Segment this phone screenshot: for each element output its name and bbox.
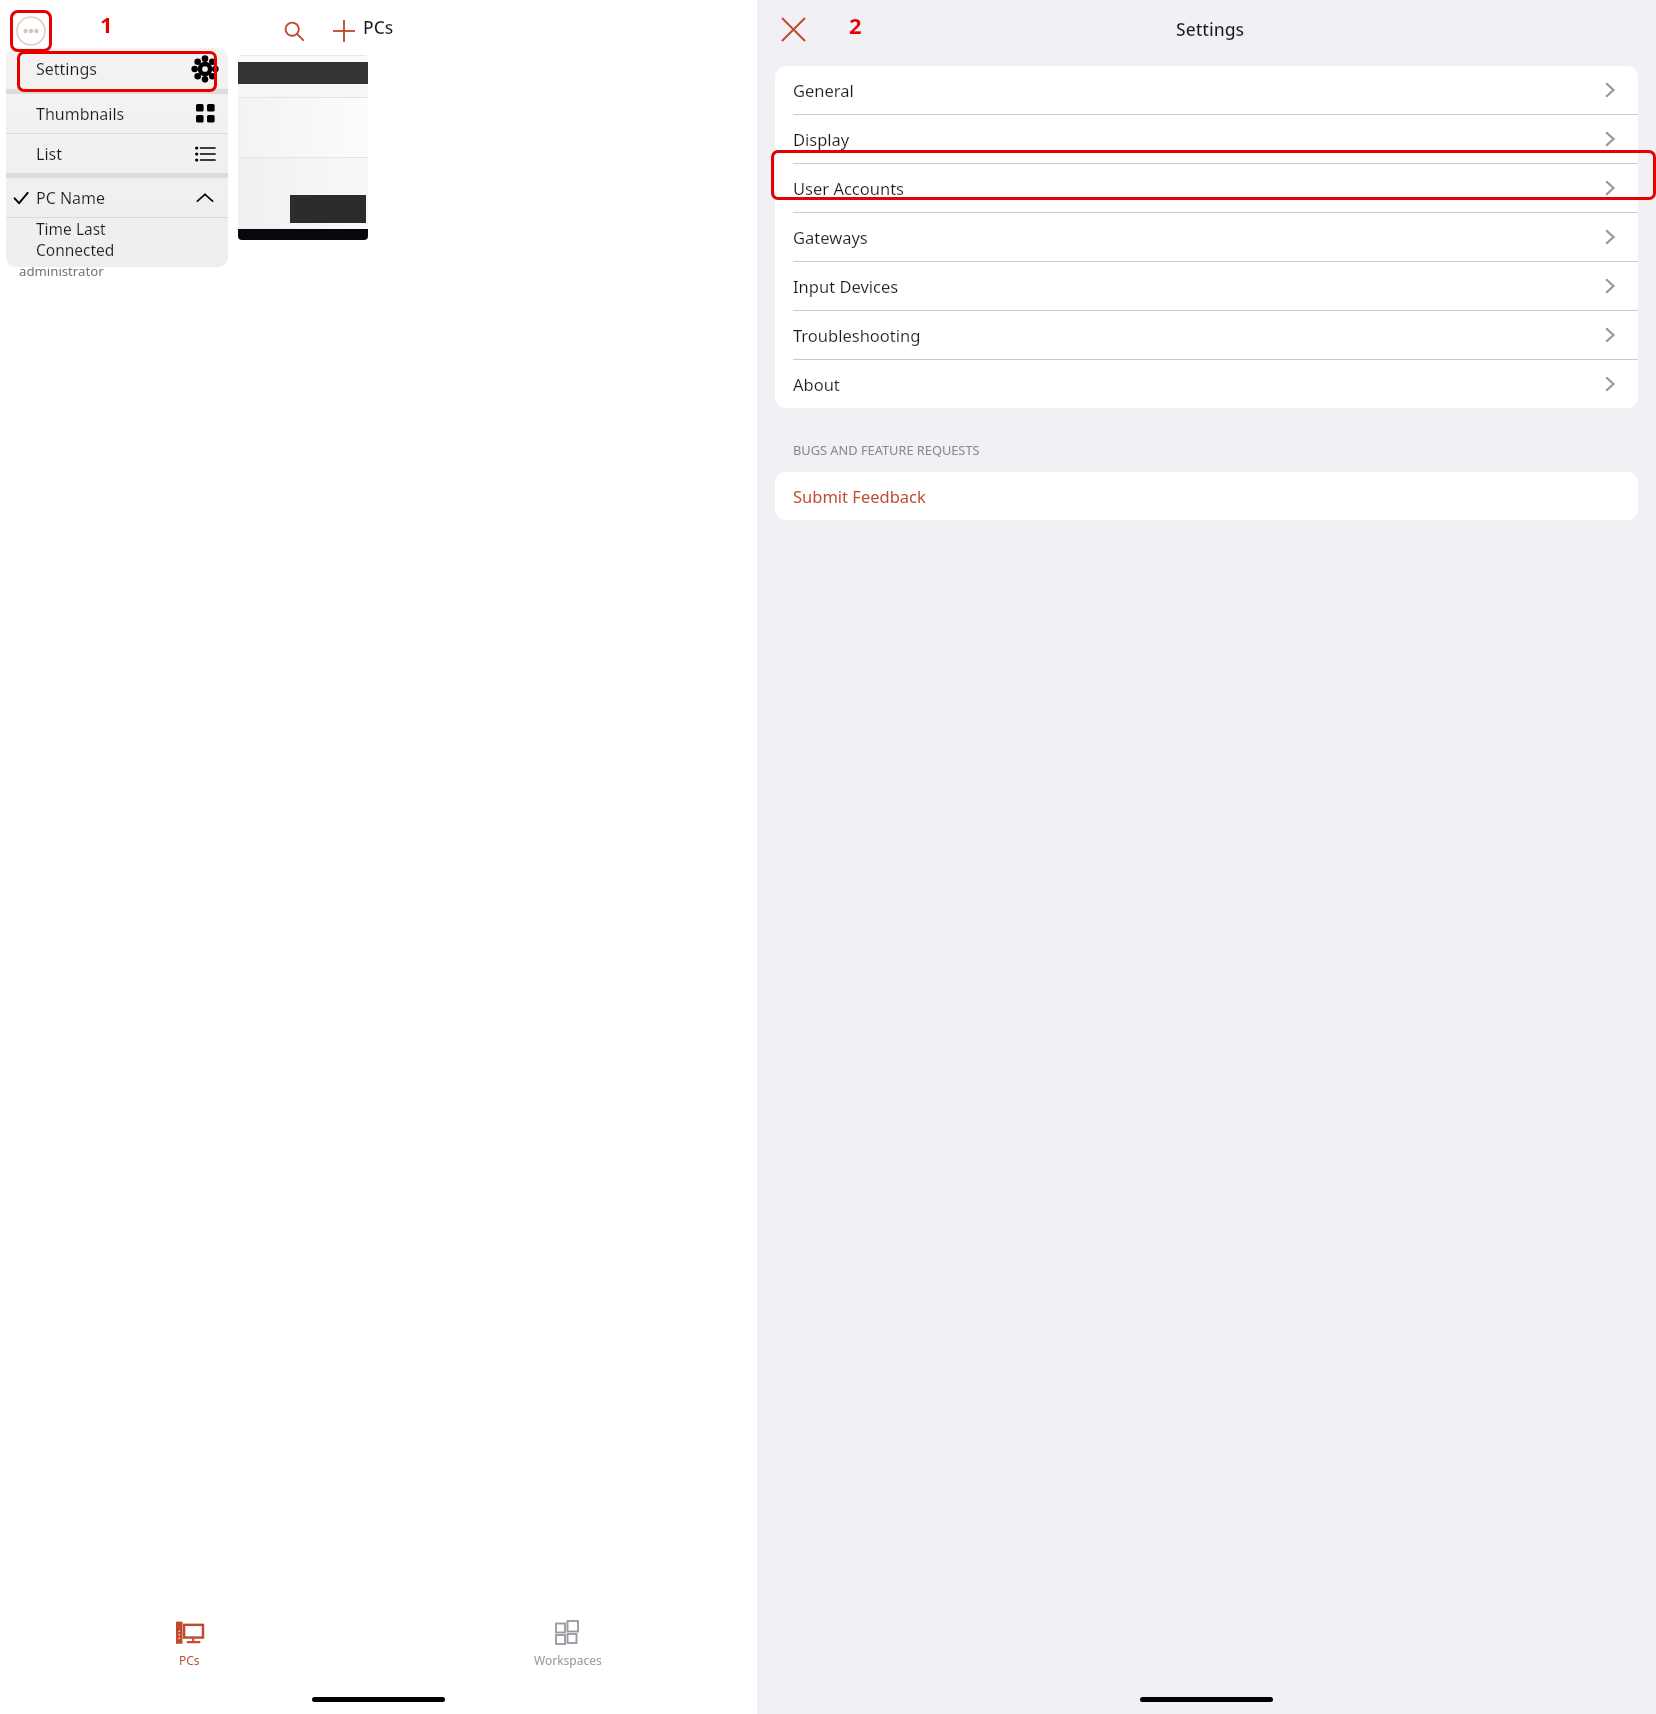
staticText: PCs [363,15,394,39]
button[interactable]: Submit Feedback [775,472,1638,520]
staticText: Settings [1176,17,1245,41]
button[interactable]: Display [775,115,1638,163]
button[interactable]: Time Last Connected [6,218,228,257]
button[interactable]: Input Devices [775,262,1638,310]
staticText: 1 [100,9,113,39]
staticText: Thumbnails [36,103,182,125]
button[interactable]: General [775,66,1638,114]
staticText: About [793,373,1602,395]
button[interactable]: User Accounts [775,164,1638,212]
staticText: General [793,79,1602,101]
button[interactable]: Close [772,8,814,50]
staticText: BUGS AND FEATURE REQUESTS [793,441,980,458]
button[interactable]: Thumbnails [6,94,228,133]
staticText: Troubleshooting [793,324,1602,346]
staticText: Input Devices [793,275,1602,297]
staticText: Submit Feedback [793,485,926,507]
button[interactable]: Gateways [775,213,1638,261]
staticText: Gateways [793,226,1602,248]
button[interactable]: Settings [6,48,228,89]
staticText: administrator [19,262,104,280]
staticText: PC Name [36,187,182,209]
staticText: Time Last Connected [36,218,182,257]
staticText: 2 [849,10,862,40]
button[interactable]: Workspaces [378,1618,757,1678]
staticText: List [36,143,182,165]
button[interactable]: PC Name [6,178,228,217]
staticText: Settings [36,58,182,80]
staticText: PCs [179,1652,200,1668]
button[interactable]: More options [13,13,49,49]
button[interactable]: About [775,360,1638,408]
staticText: User Accounts [793,177,1602,199]
button[interactable]: Troubleshooting [775,311,1638,359]
button[interactable]: List [6,134,228,173]
button[interactable]: Add PC [323,10,365,52]
button[interactable]: Search [273,10,315,52]
staticText: Display [793,128,1602,150]
staticText: Workspaces [534,1652,602,1668]
button[interactable]: PCs [0,1618,378,1678]
